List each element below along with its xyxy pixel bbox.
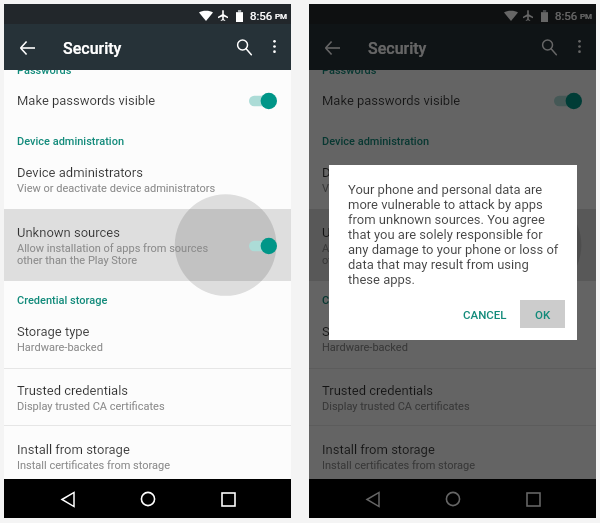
staticText: View or deactivate device administrators [322, 182, 521, 195]
staticText: Storage type [322, 324, 395, 339]
button[interactable]: Trusted credentials [309, 379, 596, 419]
button[interactable]: Device administrators [309, 161, 596, 200]
staticText: Install certificates from storage [17, 459, 170, 472]
button[interactable]: Make passwords visible [309, 83, 596, 125]
staticText: PM [580, 12, 593, 21]
staticText: Unknown sources [17, 225, 120, 240]
staticText: Install from storage [322, 442, 435, 457]
staticText: Passwords [17, 64, 72, 77]
button[interactable]: Device administrators [4, 161, 291, 200]
staticText: Credential storage [17, 294, 108, 307]
staticText: View or deactivate device administrators [17, 182, 216, 195]
staticText: Display trusted CA certificates [17, 400, 165, 413]
button[interactable]: Toggle switch [554, 91, 582, 111]
button[interactable]: More options [563, 30, 595, 62]
staticText: Install from storage [17, 442, 130, 457]
staticText: Device administrators [322, 165, 448, 180]
staticText: Allow installation of apps from sources … [17, 242, 209, 267]
staticText: Trusted credentials [322, 383, 434, 398]
button[interactable]: Search [533, 31, 565, 63]
button[interactable]: Toggle switch [249, 236, 277, 256]
button[interactable]: Navigate up [316, 32, 348, 64]
button[interactable]: Home [435, 481, 471, 517]
button[interactable]: Back [355, 481, 391, 517]
staticText: Hardware-backed [322, 341, 408, 354]
button[interactable]: Unknown sources [309, 209, 596, 281]
staticText: Make passwords visible [322, 93, 461, 108]
staticText: Trusted credentials [17, 383, 129, 398]
button[interactable]: Recent apps [515, 481, 551, 517]
staticText: Device administrators [17, 165, 143, 180]
staticText: Passwords [322, 64, 377, 77]
button[interactable]: Make passwords visible [4, 83, 291, 125]
staticText: PM [275, 12, 288, 21]
staticText: Your phone and personal data are more vu… [348, 182, 561, 287]
button[interactable]: Back [50, 481, 86, 517]
staticText: 8:56 [250, 9, 273, 22]
staticText: Hardware-backed [17, 341, 103, 354]
staticText: Unknown sources [322, 225, 425, 240]
staticText: Device administration [17, 135, 125, 148]
button[interactable]: Search [228, 31, 260, 63]
staticText: Storage type [17, 324, 90, 339]
staticText: Security [368, 39, 427, 58]
button[interactable]: Home [130, 481, 166, 517]
button[interactable]: Storage type [309, 320, 596, 360]
button[interactable]: Storage type [4, 320, 291, 360]
staticText: OK [535, 308, 551, 321]
button[interactable]: Trusted credentials [4, 379, 291, 419]
staticText: CANCEL [463, 308, 507, 321]
staticText: Credential storage [322, 294, 413, 307]
staticText: Display trusted CA certificates [322, 400, 470, 413]
button[interactable]: OK [520, 300, 565, 328]
button[interactable]: Install from storage [309, 438, 596, 478]
staticText: 8:56 [555, 9, 578, 22]
staticText: Allow installation of apps from sources … [322, 242, 514, 267]
button[interactable]: Toggle switch [249, 91, 277, 111]
button[interactable]: CANCEL [455, 300, 515, 328]
button[interactable]: Install from storage [4, 438, 291, 478]
staticText: Make passwords visible [17, 93, 156, 108]
button[interactable]: Recent apps [210, 481, 246, 517]
button[interactable]: Navigate up [11, 32, 43, 64]
staticText: Device administration [322, 135, 430, 148]
button[interactable]: Unknown sources [4, 209, 291, 281]
staticText: Install certificates from storage [322, 459, 475, 472]
staticText: Security [63, 39, 122, 58]
button[interactable]: More options [258, 30, 290, 62]
